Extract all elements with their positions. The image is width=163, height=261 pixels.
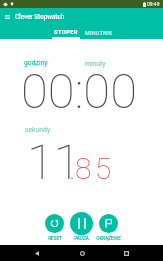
button[interactable]: Home (75, 246, 89, 260)
staticText: 11 (27, 134, 81, 191)
button[interactable]: Lap (99, 214, 118, 233)
staticText: Clever Stopwatch (15, 13, 65, 20)
button[interactable]: Reset (45, 214, 64, 233)
button[interactable]: Pause (70, 212, 93, 235)
staticText: . (69, 151, 76, 186)
staticText: RESET (48, 236, 62, 241)
button[interactable]: STOPER (49, 26, 82, 39)
staticText: OKRĄŻENIE (96, 236, 121, 241)
button[interactable]: Back (30, 246, 44, 260)
staticText: 00:00 (21, 63, 137, 120)
staticText: 85 (75, 151, 115, 186)
staticText: godziny (24, 59, 48, 67)
staticText: sekundy (25, 126, 51, 134)
staticText: 09:49 (147, 1, 160, 7)
staticText: minuty (85, 60, 106, 68)
staticText: STOPER (54, 29, 78, 36)
staticText: PAUZA (74, 236, 89, 241)
button[interactable]: MINUTNIK (82, 26, 115, 39)
button[interactable]: Open navigation menu (1, 10, 14, 23)
staticText: MINUTNIK (85, 30, 113, 36)
button[interactable]: Recent apps (119, 246, 133, 260)
